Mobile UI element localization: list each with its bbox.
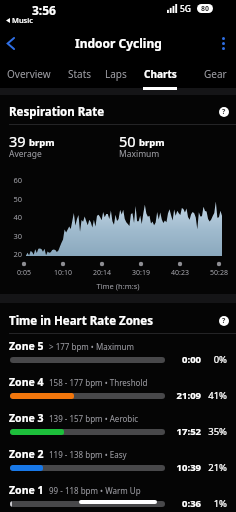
staticText: Zone 2 — [9, 447, 44, 461]
button[interactable]: Zone 3 — [0, 407, 236, 443]
staticText: 0:36 — [173, 497, 201, 510]
button[interactable]: Stats — [63, 58, 97, 92]
staticText: Stats — [68, 67, 92, 81]
staticText: 41% — [206, 389, 227, 402]
staticText: 80 — [201, 4, 210, 13]
button[interactable]: More options — [210, 30, 236, 56]
staticText: Zone 4 — [9, 375, 44, 389]
staticText: Time (h:m:s) — [0, 281, 236, 291]
staticText: Maximum — [119, 148, 160, 160]
staticText: 0% — [206, 353, 227, 366]
staticText: Gear — [204, 67, 227, 81]
staticText: 20 — [0, 249, 22, 259]
staticText: 50 — [0, 194, 22, 204]
button[interactable]: Zone 4 — [0, 371, 236, 407]
button[interactable]: Gear — [198, 58, 232, 92]
button[interactable]: Help — [217, 105, 231, 119]
staticText: 10:39 — [173, 461, 201, 474]
staticText: Indoor Cycling — [75, 35, 162, 51]
button[interactable]: Charts — [141, 58, 179, 92]
staticText: 30:19 — [132, 268, 150, 278]
staticText: 119 - 138 bpm • Easy — [49, 449, 127, 460]
button[interactable]: Back — [0, 30, 22, 56]
staticText: 50:28 — [210, 268, 228, 278]
staticText: 158 - 177 bpm • Threshold — [49, 377, 148, 388]
staticText: Respiration Rate — [9, 104, 105, 120]
button[interactable]: Laps — [100, 58, 132, 92]
staticText: 60 — [0, 175, 22, 185]
staticText: Music — [12, 15, 33, 25]
staticText: 35% — [206, 425, 227, 438]
staticText: 21:09 — [173, 389, 201, 402]
staticText: 10:10 — [54, 268, 72, 278]
staticText: brpm — [29, 136, 55, 149]
staticText: 40 — [0, 212, 22, 222]
staticText: 1% — [206, 497, 227, 510]
staticText: 99 - 118 bpm • Warm Up — [49, 485, 141, 496]
button[interactable]: Help — [217, 314, 231, 328]
button[interactable]: Zone 1 — [0, 479, 236, 512]
staticText: 20:14 — [93, 268, 111, 278]
staticText: ? — [222, 107, 226, 117]
staticText: ? — [222, 316, 226, 326]
staticText: 0:00 — [173, 353, 201, 366]
staticText: Zone 1 — [9, 483, 44, 497]
staticText: Overview — [7, 67, 51, 81]
button[interactable]: Overview — [4, 58, 54, 92]
staticText: 17:52 — [173, 425, 201, 438]
staticText: 21% — [206, 461, 227, 474]
staticText: Zone 5 — [9, 339, 44, 353]
staticText: 39 — [9, 131, 26, 151]
button[interactable]: Zone 2 — [0, 443, 236, 479]
staticText: 40:23 — [171, 268, 189, 278]
staticText: 3:56 — [32, 2, 56, 18]
staticText: 50 — [119, 131, 136, 151]
staticText: Zone 3 — [9, 411, 44, 425]
staticText: Average — [9, 148, 42, 160]
staticText: 0:05 — [17, 268, 31, 278]
staticText: Charts — [144, 67, 177, 81]
staticText: > 177 bpm • Maximum — [49, 341, 134, 352]
staticText: Laps — [105, 67, 127, 81]
button[interactable]: Zone 5 — [0, 335, 236, 371]
staticText: 30 — [0, 231, 22, 241]
staticText: Time in Heart Rate Zones — [9, 313, 153, 329]
staticText: 139 - 157 bpm • Aerobic — [49, 413, 139, 424]
staticText: 5G — [180, 3, 192, 15]
staticText: brpm — [139, 136, 165, 149]
